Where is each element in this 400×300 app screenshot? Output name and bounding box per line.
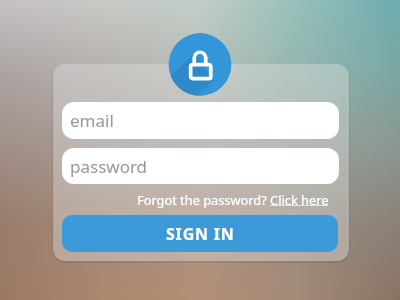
staticText: Forgot the password? Click here [137, 191, 329, 208]
staticText: SIGN IN [166, 223, 235, 245]
staticText: email [70, 109, 114, 132]
staticText: password [70, 155, 148, 178]
